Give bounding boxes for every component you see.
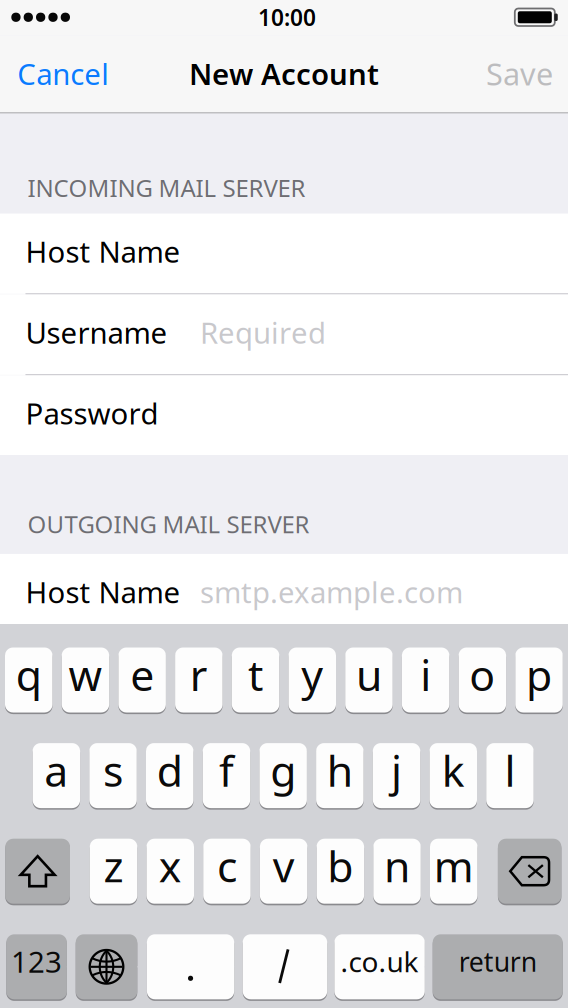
button[interactable]: i: [402, 646, 449, 713]
staticText: d: [157, 742, 183, 798]
staticText: w: [68, 646, 102, 703]
button[interactable]: return: [433, 933, 563, 1000]
button[interactable]: x: [146, 838, 194, 905]
staticText: l: [504, 742, 515, 798]
staticText: n: [384, 837, 410, 894]
staticText: Cancel: [17, 54, 109, 93]
staticText: a: [44, 742, 68, 798]
staticText: INCOMING MAIL SERVER: [27, 172, 305, 204]
staticText: r: [190, 646, 208, 703]
button[interactable]: Delete: [498, 838, 561, 905]
button[interactable]: v: [260, 838, 307, 905]
button[interactable]: Slash: [243, 933, 327, 1000]
staticText: v: [273, 837, 295, 894]
button[interactable]: j: [373, 742, 420, 809]
button[interactable]: t: [232, 646, 279, 713]
staticText: return: [459, 944, 537, 979]
staticText: b: [327, 837, 353, 894]
button[interactable]: c: [203, 838, 251, 905]
button[interactable]: Period: [147, 933, 234, 1000]
button[interactable]: Cancel: [0, 35, 137, 112]
button[interactable]: w: [62, 646, 109, 713]
button[interactable]: k: [429, 742, 477, 809]
staticText: i: [420, 646, 431, 703]
button[interactable]: d: [146, 742, 193, 809]
button[interactable]: a: [33, 742, 80, 809]
button[interactable]: g: [259, 742, 307, 809]
button[interactable]: p: [515, 646, 563, 713]
staticText: x: [159, 837, 182, 894]
button[interactable]: f: [203, 742, 250, 809]
button[interactable]: o: [459, 646, 506, 713]
staticText: Required: [200, 313, 326, 352]
button[interactable]: Password: [0, 375, 568, 455]
button[interactable]: .co.uk: [334, 933, 425, 1000]
button[interactable]: Host Name: [0, 554, 568, 634]
button[interactable]: Save: [463, 35, 568, 112]
staticText: t: [248, 646, 263, 703]
button[interactable]: b: [317, 838, 364, 905]
staticText: OUTGOING MAIL SERVER: [27, 508, 309, 540]
staticText: New Account: [189, 54, 379, 93]
staticText: Username: [25, 313, 167, 352]
button[interactable]: Next keyboard: [76, 933, 137, 1000]
staticText: smtp.example.com: [200, 572, 463, 611]
staticText: Password: [25, 394, 158, 433]
staticText: Host Name: [25, 232, 180, 271]
staticText: s: [103, 742, 123, 798]
button[interactable]: q: [5, 646, 52, 713]
button[interactable]: Username: [0, 294, 568, 374]
staticText: .co.uk: [341, 943, 419, 980]
button[interactable]: y: [288, 646, 336, 713]
staticText: k: [442, 742, 465, 798]
staticText: Host Name: [25, 572, 180, 611]
staticText: g: [270, 742, 296, 798]
staticText: f: [219, 742, 234, 798]
staticText: j: [391, 742, 402, 798]
button[interactable]: n: [373, 838, 421, 905]
staticText: Save: [486, 53, 553, 94]
button[interactable]: u: [345, 646, 393, 713]
staticText: 10:00: [258, 2, 316, 32]
staticText: o: [469, 646, 495, 703]
staticText: z: [103, 837, 123, 894]
staticText: y: [301, 646, 323, 703]
button[interactable]: s: [89, 742, 137, 809]
button[interactable]: l: [486, 742, 534, 809]
staticText: c: [217, 837, 237, 894]
button[interactable]: r: [175, 646, 223, 713]
staticText: e: [130, 646, 154, 703]
button[interactable]: h: [316, 742, 364, 809]
staticText: h: [327, 742, 353, 798]
button[interactable]: 123: [6, 933, 67, 1000]
button[interactable]: e: [118, 646, 166, 713]
staticText: u: [356, 646, 382, 703]
staticText: 123: [11, 942, 62, 981]
staticText: q: [16, 646, 42, 703]
button[interactable]: Shift: [5, 838, 70, 905]
staticText: p: [526, 646, 552, 703]
button[interactable]: z: [90, 838, 137, 905]
staticText: m: [434, 837, 474, 894]
button[interactable]: Host Name: [0, 214, 568, 293]
button[interactable]: m: [430, 838, 477, 905]
